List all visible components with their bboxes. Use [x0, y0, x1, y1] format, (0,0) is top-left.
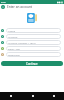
button[interactable]: Account — [0, 33, 64, 39]
button[interactable]: Reference — [0, 51, 64, 57]
staticText: Reference — [8, 53, 20, 56]
button[interactable]: Recents — [43, 92, 64, 100]
staticText: Account number / IBAN — [8, 41, 36, 44]
button[interactable]: Bank / BIC — [0, 45, 64, 51]
button[interactable]: Name — [0, 27, 64, 33]
button[interactable]: Home — [22, 92, 43, 100]
staticText: Bank / BIC — [8, 47, 21, 50]
button[interactable]: Back — [0, 92, 22, 100]
button[interactable]: Account number / IBAN — [0, 39, 64, 45]
button[interactable]: Continue — [1, 61, 63, 66]
staticText: Enter an account — [7, 5, 33, 9]
staticText: Account — [8, 35, 18, 38]
button[interactable]: App logo — [1, 5, 5, 9]
staticText: 9:30 — [1, 1, 6, 4]
staticText: Name — [8, 29, 16, 32]
staticText: Continue — [26, 62, 38, 66]
